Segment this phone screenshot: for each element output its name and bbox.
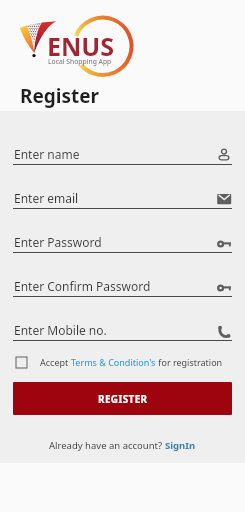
button[interactable]: Enter Mobile no. [0,316,245,341]
staticText: Already have an account? [49,439,165,452]
staticText: Local Shopping App [48,57,112,66]
staticText: ENUS [47,29,115,63]
staticText: Terms & Condition's [71,356,156,368]
button[interactable]: REGISTER [13,382,232,415]
staticText: REGISTER [98,392,148,406]
staticText: Enter email [14,190,79,206]
staticText: Accept [40,356,71,368]
staticText: Register [20,83,100,109]
other: Password [217,281,231,295]
other: Name [217,148,231,162]
button[interactable]: SignIn [165,439,196,452]
button[interactable]: Accept terms [0,352,245,372]
staticText: Enter name [14,146,80,162]
staticText: Enter Mobile no. [14,322,107,338]
other: Accept terms [16,357,27,368]
staticText: Enter Password [14,234,102,250]
other: Password [217,237,231,251]
staticText: for registration [156,356,223,368]
button[interactable]: Enter Confirm Password [0,272,245,297]
staticText: SignIn [165,439,196,452]
other: Mobile number [217,325,231,339]
button[interactable]: Enter name [0,140,245,165]
button[interactable]: Enter Password [0,228,245,253]
staticText: Enter Confirm Password [14,278,151,294]
button[interactable]: Enter email [0,184,245,209]
other: Email [217,192,231,206]
